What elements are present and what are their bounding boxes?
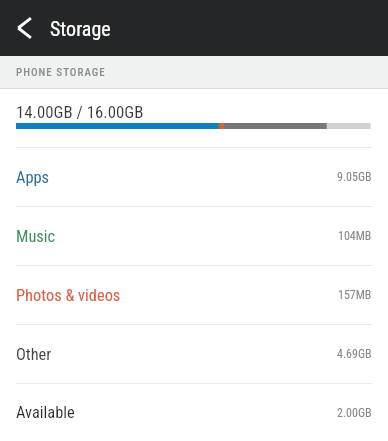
staticText: Available [16,403,75,422]
button[interactable]: Other [0,325,388,384]
staticText: PHONE STORAGE [16,66,106,79]
button[interactable]: Apps [0,148,388,207]
staticText: Photos & videos [16,286,121,305]
staticText: 157MB [338,288,372,302]
staticText: Storage [50,17,111,40]
staticText: 104MB [338,229,372,243]
button[interactable]: 14.00GB / 16.00GB [0,90,388,147]
staticText: 9.05GB [337,170,372,184]
staticText: 14.00GB / 16.00GB [16,102,144,122]
staticText: Other [16,345,52,364]
button[interactable]: Photos & videos [0,266,388,325]
button[interactable]: Available [0,384,388,441]
staticText: 2.00GB [337,406,372,420]
button[interactable]: Back [0,0,50,56]
staticText: Apps [16,168,50,187]
button[interactable]: Music [0,207,388,266]
staticText: Music [16,227,56,246]
staticText: 4.69GB [337,347,372,361]
